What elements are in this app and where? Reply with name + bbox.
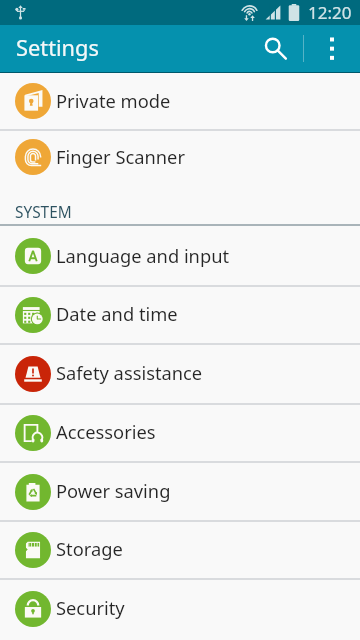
button[interactable]: Storage <box>0 520 360 579</box>
staticText: Language and input <box>56 243 230 268</box>
staticText: Accessories <box>56 419 156 444</box>
button[interactable]: Security <box>0 579 360 638</box>
button[interactable]: Search <box>248 25 303 72</box>
button[interactable]: Finger Scanner <box>0 129 360 185</box>
staticText: Finger Scanner <box>56 144 185 169</box>
button[interactable]: More options <box>304 25 360 72</box>
staticText: Power saving <box>56 478 171 503</box>
staticText: Settings <box>16 33 99 63</box>
button[interactable]: Date and time <box>0 285 360 344</box>
button[interactable]: Language and input <box>0 227 360 285</box>
staticText: SYSTEM <box>15 202 72 223</box>
button[interactable]: Safety assistance <box>0 344 360 403</box>
staticText: 12:20 <box>308 1 352 24</box>
staticText: Safety assistance <box>56 360 203 385</box>
staticText: Private mode <box>56 88 171 113</box>
button[interactable]: Power saving <box>0 462 360 521</box>
staticText: Date and time <box>56 301 178 326</box>
button[interactable]: Private mode <box>0 73 360 129</box>
staticText: Security <box>56 595 125 620</box>
button[interactable]: Accessories <box>0 403 360 462</box>
staticText: Storage <box>56 536 123 561</box>
